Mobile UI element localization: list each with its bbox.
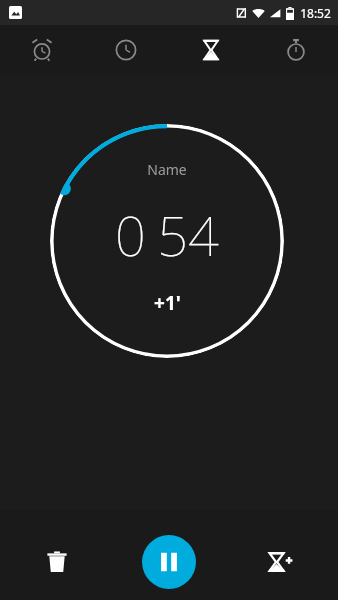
button[interactable]: Stopwatch: [253, 25, 338, 75]
button[interactable]: +1': [146, 288, 189, 318]
button[interactable]: Timer progress: [50, 124, 284, 358]
staticText: 54: [157, 198, 219, 272]
button[interactable]: Alarms: [0, 25, 84, 75]
button[interactable]: Clock: [84, 25, 168, 75]
button[interactable]: Delete timer: [33, 538, 81, 586]
button[interactable]: Pause timer: [142, 535, 196, 589]
staticText: 0: [115, 198, 146, 272]
staticText: Name: [147, 160, 187, 179]
button[interactable]: Add timer: [257, 538, 305, 586]
button[interactable]: Timers: [168, 25, 253, 75]
staticText: 18:52: [300, 5, 331, 21]
staticText: +1': [154, 290, 181, 316]
